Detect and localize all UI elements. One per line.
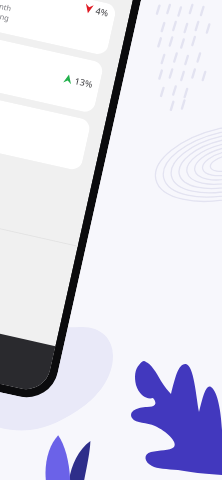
staticText: 4% (94, 4, 110, 18)
staticText: Saving (0, 8, 10, 23)
button[interactable]: Bottom navigation (0, 306, 55, 394)
button[interactable] (0, 0, 117, 56)
button[interactable] (0, 87, 92, 171)
button[interactable]: Last month (0, 0, 12, 23)
staticText: 13% (74, 74, 94, 90)
button[interactable]: 13% (63, 72, 94, 90)
staticText: Last month (0, 0, 12, 13)
button[interactable] (0, 29, 104, 114)
button[interactable]: 4% (84, 2, 110, 18)
